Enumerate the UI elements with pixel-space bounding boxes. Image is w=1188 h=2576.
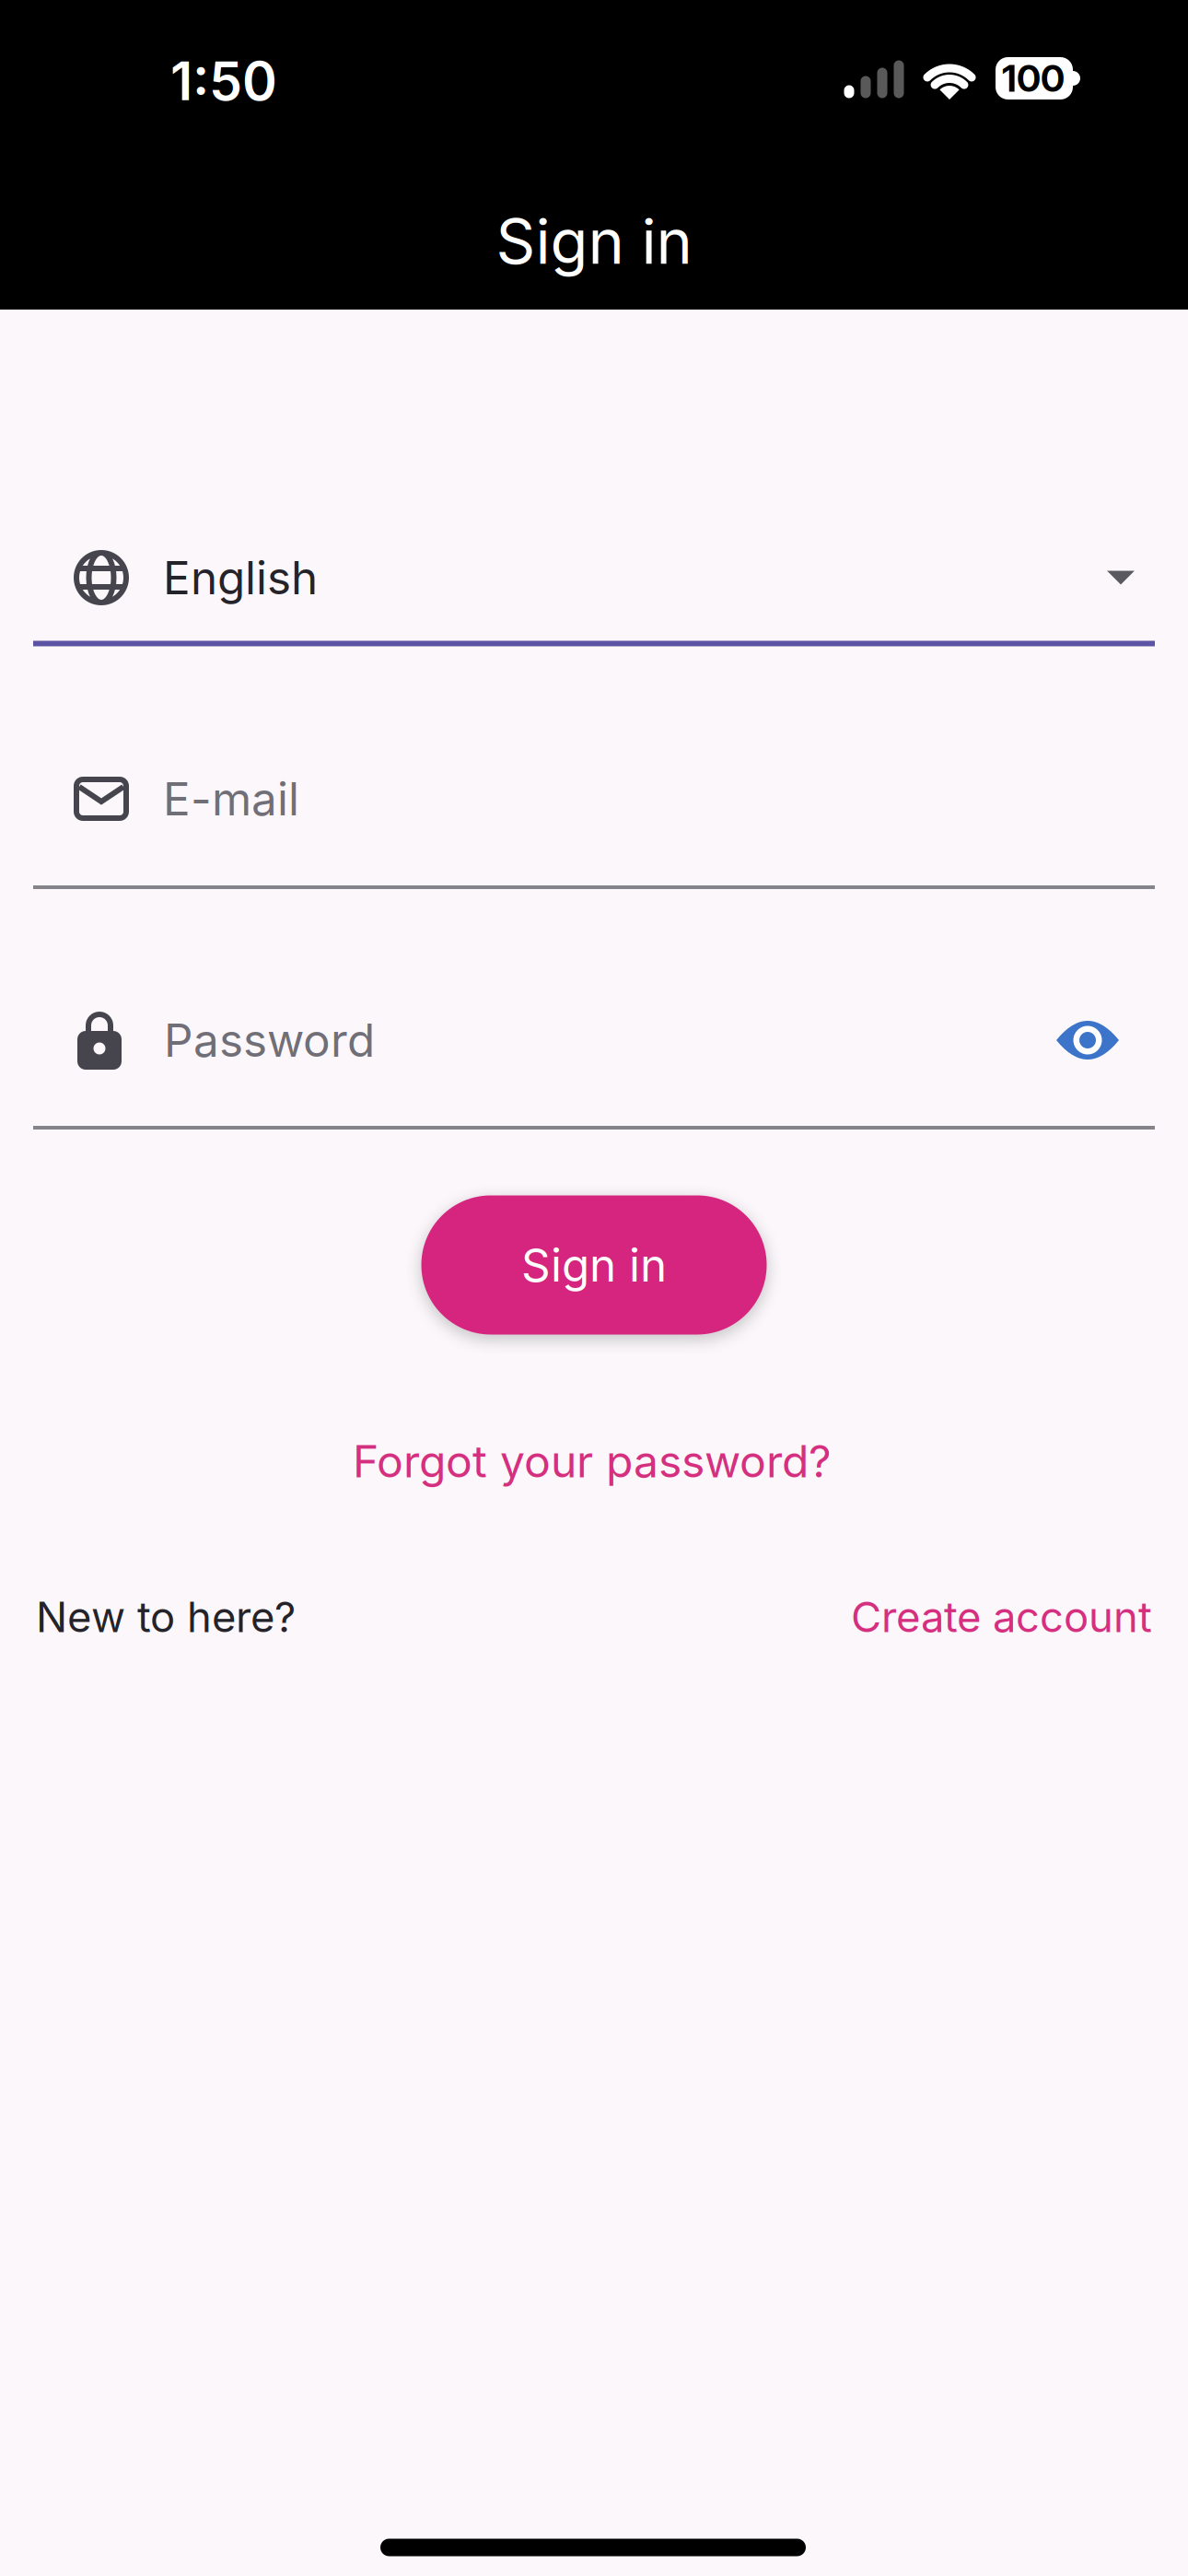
staticText: Sign in	[496, 205, 692, 278]
button[interactable]: E-mail	[33, 744, 1155, 854]
button[interactable]: Sign in	[421, 1195, 767, 1335]
staticText: Create account	[851, 1592, 1152, 1642]
staticText: E-mail	[163, 772, 299, 826]
button[interactable]: Create account	[851, 1592, 1152, 1642]
button[interactable]: English	[33, 522, 1155, 633]
button[interactable]: Show password	[1056, 1015, 1119, 1065]
staticText: Sign in	[521, 1238, 667, 1292]
staticText: English	[163, 551, 318, 604]
staticText: 100	[1002, 57, 1065, 100]
button[interactable]: Forgot your password?	[353, 1435, 832, 1487]
staticText: 1:50	[170, 50, 277, 112]
staticText: Password	[164, 1013, 375, 1067]
button[interactable]: Password	[33, 980, 1155, 1100]
staticText: New to here?	[36, 1592, 296, 1642]
staticText: Forgot your password?	[353, 1435, 832, 1487]
